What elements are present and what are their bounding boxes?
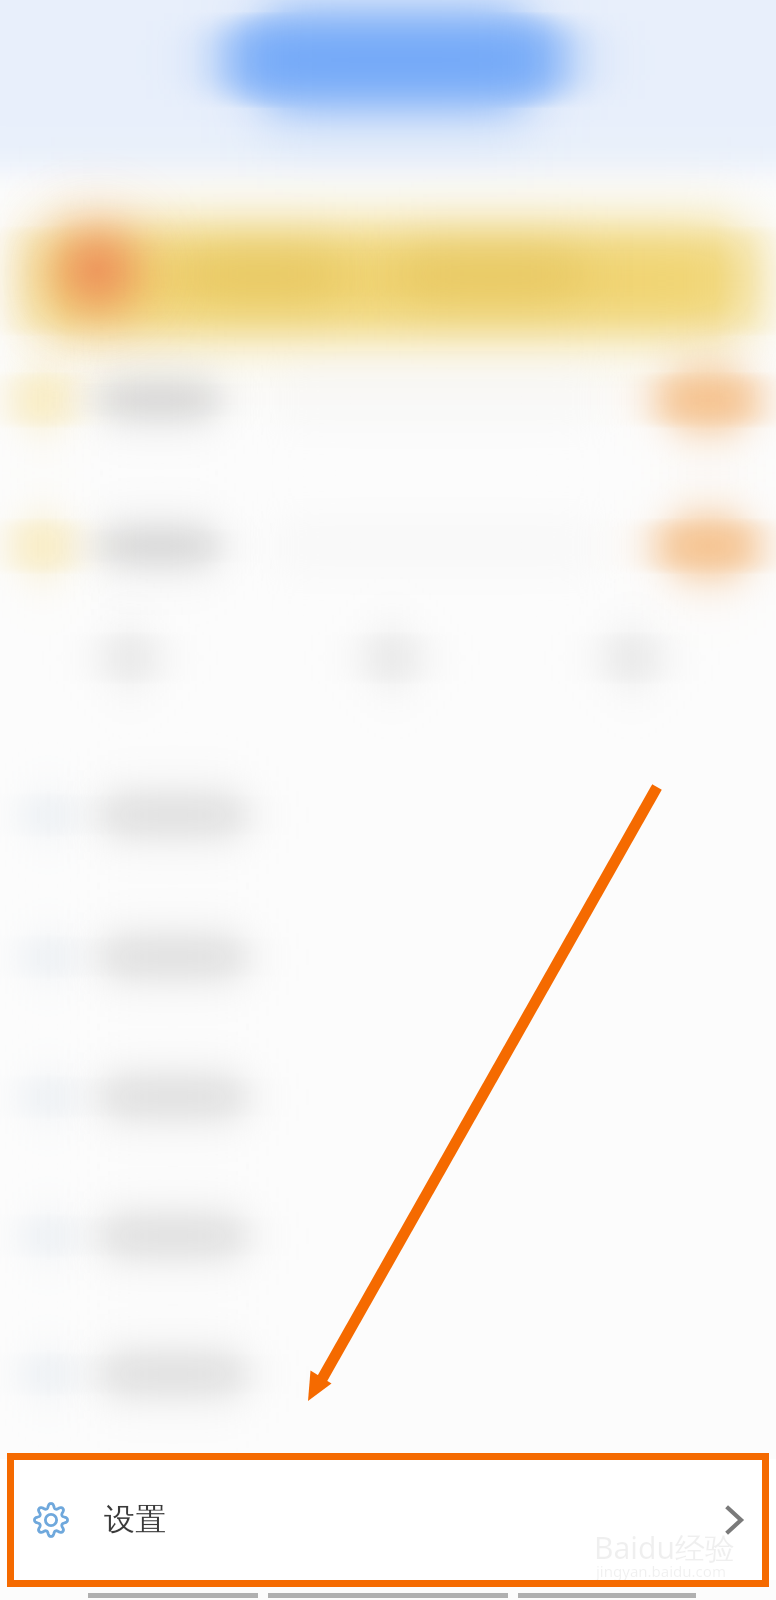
- button[interactable]: Quick action 3: [584, 618, 680, 702]
- button[interactable]: Recent apps: [517, 1586, 776, 1600]
- button[interactable]: List item 4: [0, 1186, 776, 1286]
- button[interactable]: Back: [0, 1586, 258, 1600]
- button[interactable]: Promotion banner: [26, 226, 756, 336]
- button[interactable]: 设置: [0, 1459, 776, 1580]
- button[interactable]: List item 3: [0, 1047, 776, 1147]
- button[interactable]: Quick action 2: [344, 618, 440, 702]
- button[interactable]: Home: [258, 1586, 517, 1600]
- button[interactable]: Account item 1: [0, 372, 776, 428]
- staticText: 设置: [104, 1500, 166, 1539]
- button[interactable]: List item 5: [0, 1324, 776, 1424]
- button[interactable]: List item 1: [0, 765, 776, 865]
- button[interactable]: Quick action 1: [82, 618, 178, 702]
- staticText: jingyan.baidu.com: [596, 1561, 726, 1581]
- button[interactable]: Action button 2: [658, 518, 758, 574]
- button[interactable]: Search: [225, 12, 566, 108]
- button[interactable]: Account item 2: [0, 518, 776, 574]
- button[interactable]: List item 2: [0, 907, 776, 1007]
- staticText: Baidu经验: [594, 1527, 736, 1568]
- button[interactable]: Action button 1: [658, 372, 758, 428]
